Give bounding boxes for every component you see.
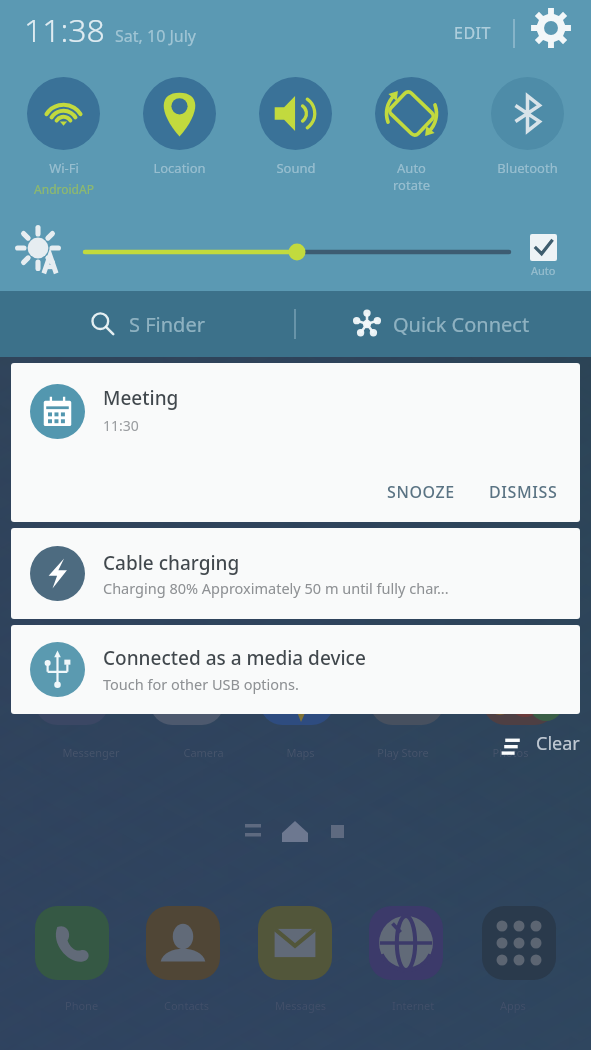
staticText: Auto rotate	[393, 159, 430, 194]
staticText: Clear	[536, 731, 580, 756]
button[interactable]: Cable charging	[11, 528, 580, 619]
staticText: Sound	[276, 159, 316, 177]
button[interactable]: Meeting	[11, 363, 580, 522]
staticText: Messenger	[62, 745, 120, 760]
staticText: Auto	[531, 263, 556, 278]
staticText: Touch for other USB options.	[103, 674, 299, 694]
staticText: Internet	[392, 998, 435, 1013]
button[interactable]: Auto rotate	[359, 77, 464, 194]
staticText: Contacts	[164, 998, 210, 1013]
staticText: Apps	[500, 998, 526, 1013]
staticText: EDIT	[454, 22, 491, 44]
button[interactable]: Sound	[243, 77, 348, 177]
button[interactable]: Bluetooth	[475, 77, 580, 177]
staticText: AndroidAP	[34, 181, 94, 197]
staticText: SNOOZE	[387, 481, 455, 503]
staticText: DISMISS	[489, 481, 558, 503]
staticText: Maps	[286, 745, 315, 760]
staticText: Phone	[65, 998, 99, 1013]
staticText: Quick Connect	[393, 311, 530, 338]
button[interactable]: Clear	[493, 726, 586, 760]
staticText: Camera	[183, 745, 224, 760]
button[interactable]: Quick Connect	[296, 291, 591, 357]
button[interactable]: Wi-Fi	[11, 77, 116, 197]
staticText: Cable charging	[103, 550, 240, 576]
staticText: Location	[153, 159, 206, 177]
staticText: Photos	[492, 745, 529, 760]
staticText: Messages	[275, 998, 327, 1013]
button[interactable]: Auto brightness	[530, 234, 557, 278]
staticText: 11:38	[24, 8, 105, 52]
staticText: S Finder	[129, 311, 205, 338]
button[interactable]: Location	[127, 77, 232, 177]
staticText: Connected as a media device	[103, 645, 366, 671]
staticText: Meeting	[103, 385, 179, 411]
button[interactable]: DISMISS	[479, 476, 568, 508]
button[interactable]: EDIT	[454, 22, 491, 44]
button[interactable]: Connected as a media device	[11, 625, 580, 714]
staticText: Charging 80% Approximately 50 m until fu…	[103, 578, 449, 598]
button[interactable]: S Finder	[0, 291, 294, 357]
staticText: Wi-Fi	[49, 159, 79, 177]
button[interactable]: SNOOZE	[377, 476, 465, 508]
staticText: Sat, 10 July	[115, 25, 196, 47]
button[interactable]: Settings	[527, 4, 575, 52]
staticText: 11:30	[103, 416, 139, 435]
staticText: Bluetooth	[497, 159, 558, 177]
staticText: Play Store	[377, 745, 429, 760]
